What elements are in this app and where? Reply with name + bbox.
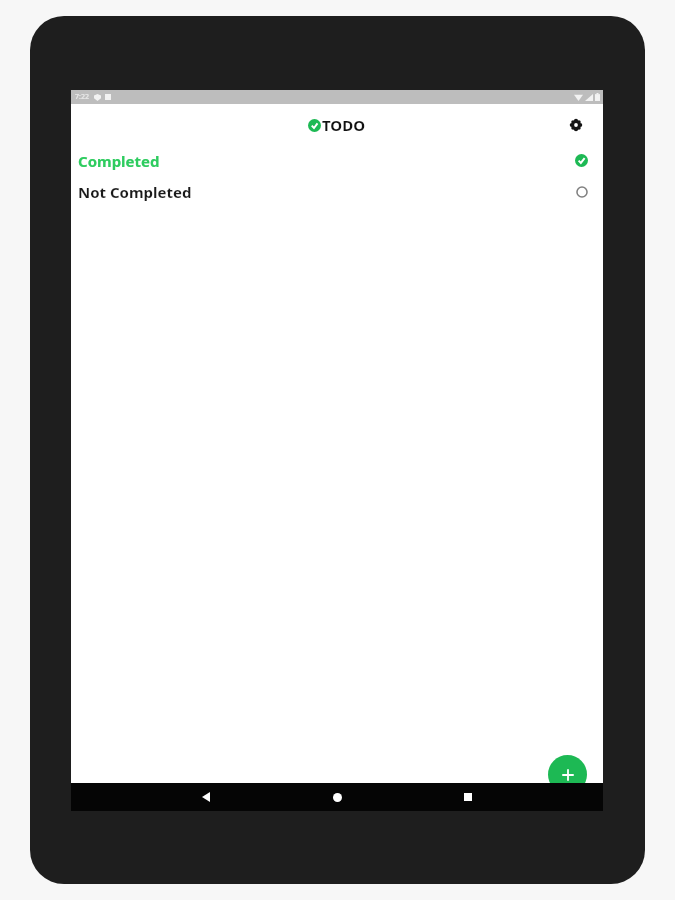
- button[interactable]: Back: [191, 783, 221, 811]
- staticText: TODO: [322, 115, 366, 135]
- button[interactable]: Not Completed: [71, 176, 603, 207]
- button[interactable]: Completed: [71, 145, 603, 176]
- staticText: 7:22: [75, 92, 89, 102]
- staticText: Not Completed: [78, 182, 576, 202]
- button[interactable]: Settings: [563, 112, 589, 138]
- button[interactable]: Recent apps: [453, 783, 483, 811]
- button[interactable]: Home: [322, 783, 352, 811]
- button[interactable]: Add task: [548, 755, 587, 794]
- staticText: Completed: [78, 151, 575, 171]
